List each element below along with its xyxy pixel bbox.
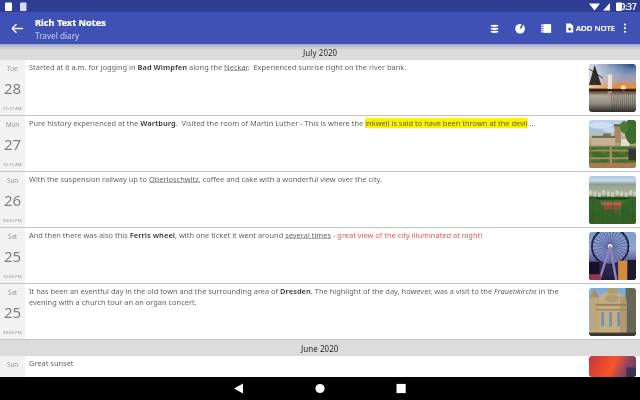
staticText: It has been an eventful day in the old t… (29, 286, 585, 307)
staticText: Sat (8, 232, 18, 240)
button[interactable]: ADD NOTE (561, 12, 618, 44)
staticText: 25 (4, 246, 22, 266)
staticText: Rich Text Notes (35, 16, 106, 29)
button[interactable]: Notebooks (534, 12, 559, 44)
button[interactable]: Sat (0, 228, 640, 283)
button[interactable]: Categories (482, 12, 507, 44)
staticText: 10:15 AM (3, 161, 22, 167)
staticText: 27 (4, 134, 22, 154)
button[interactable]: Sat (0, 284, 640, 339)
button[interactable]: Navigate up (0, 12, 34, 44)
staticText: Travel diary (35, 30, 80, 41)
staticText: Mon (6, 120, 20, 128)
staticText: And then there was also this Ferris whee… (29, 230, 483, 240)
staticText: 08:05 PM (3, 329, 22, 335)
staticText: 03:52 PM (3, 217, 22, 223)
staticText: Pure history experienced at the Wartburg… (29, 118, 536, 128)
staticText: 10:37 (616, 1, 637, 12)
button[interactable]: Mon (0, 116, 640, 171)
staticText: 10:05 PM (3, 273, 22, 279)
staticText: Tue (7, 64, 18, 72)
staticText: 25 (4, 302, 22, 322)
staticText: ADD NOTE (576, 23, 616, 34)
staticText: Sun (7, 360, 19, 368)
button[interactable]: More options (616, 12, 633, 44)
staticText: Great sunset (29, 358, 74, 368)
staticText: Sat (8, 288, 18, 296)
staticText: Started at 6 a.m. for jogging in Bad Wim… (29, 62, 407, 72)
staticText: With the suspension railway up to Oberlo… (29, 174, 383, 184)
button[interactable]: Sun (0, 172, 640, 227)
staticText: 28 (4, 78, 22, 98)
staticText: Sun (7, 176, 19, 184)
button[interactable]: Speech to text (508, 12, 533, 44)
staticText: 26 (4, 190, 22, 210)
staticText: June 2020 (301, 343, 339, 354)
button[interactable]: Tue (0, 60, 640, 115)
staticText: July 2020 (303, 47, 338, 58)
button[interactable]: Sun (0, 356, 640, 377)
staticText: 07:27 AM (3, 105, 22, 111)
